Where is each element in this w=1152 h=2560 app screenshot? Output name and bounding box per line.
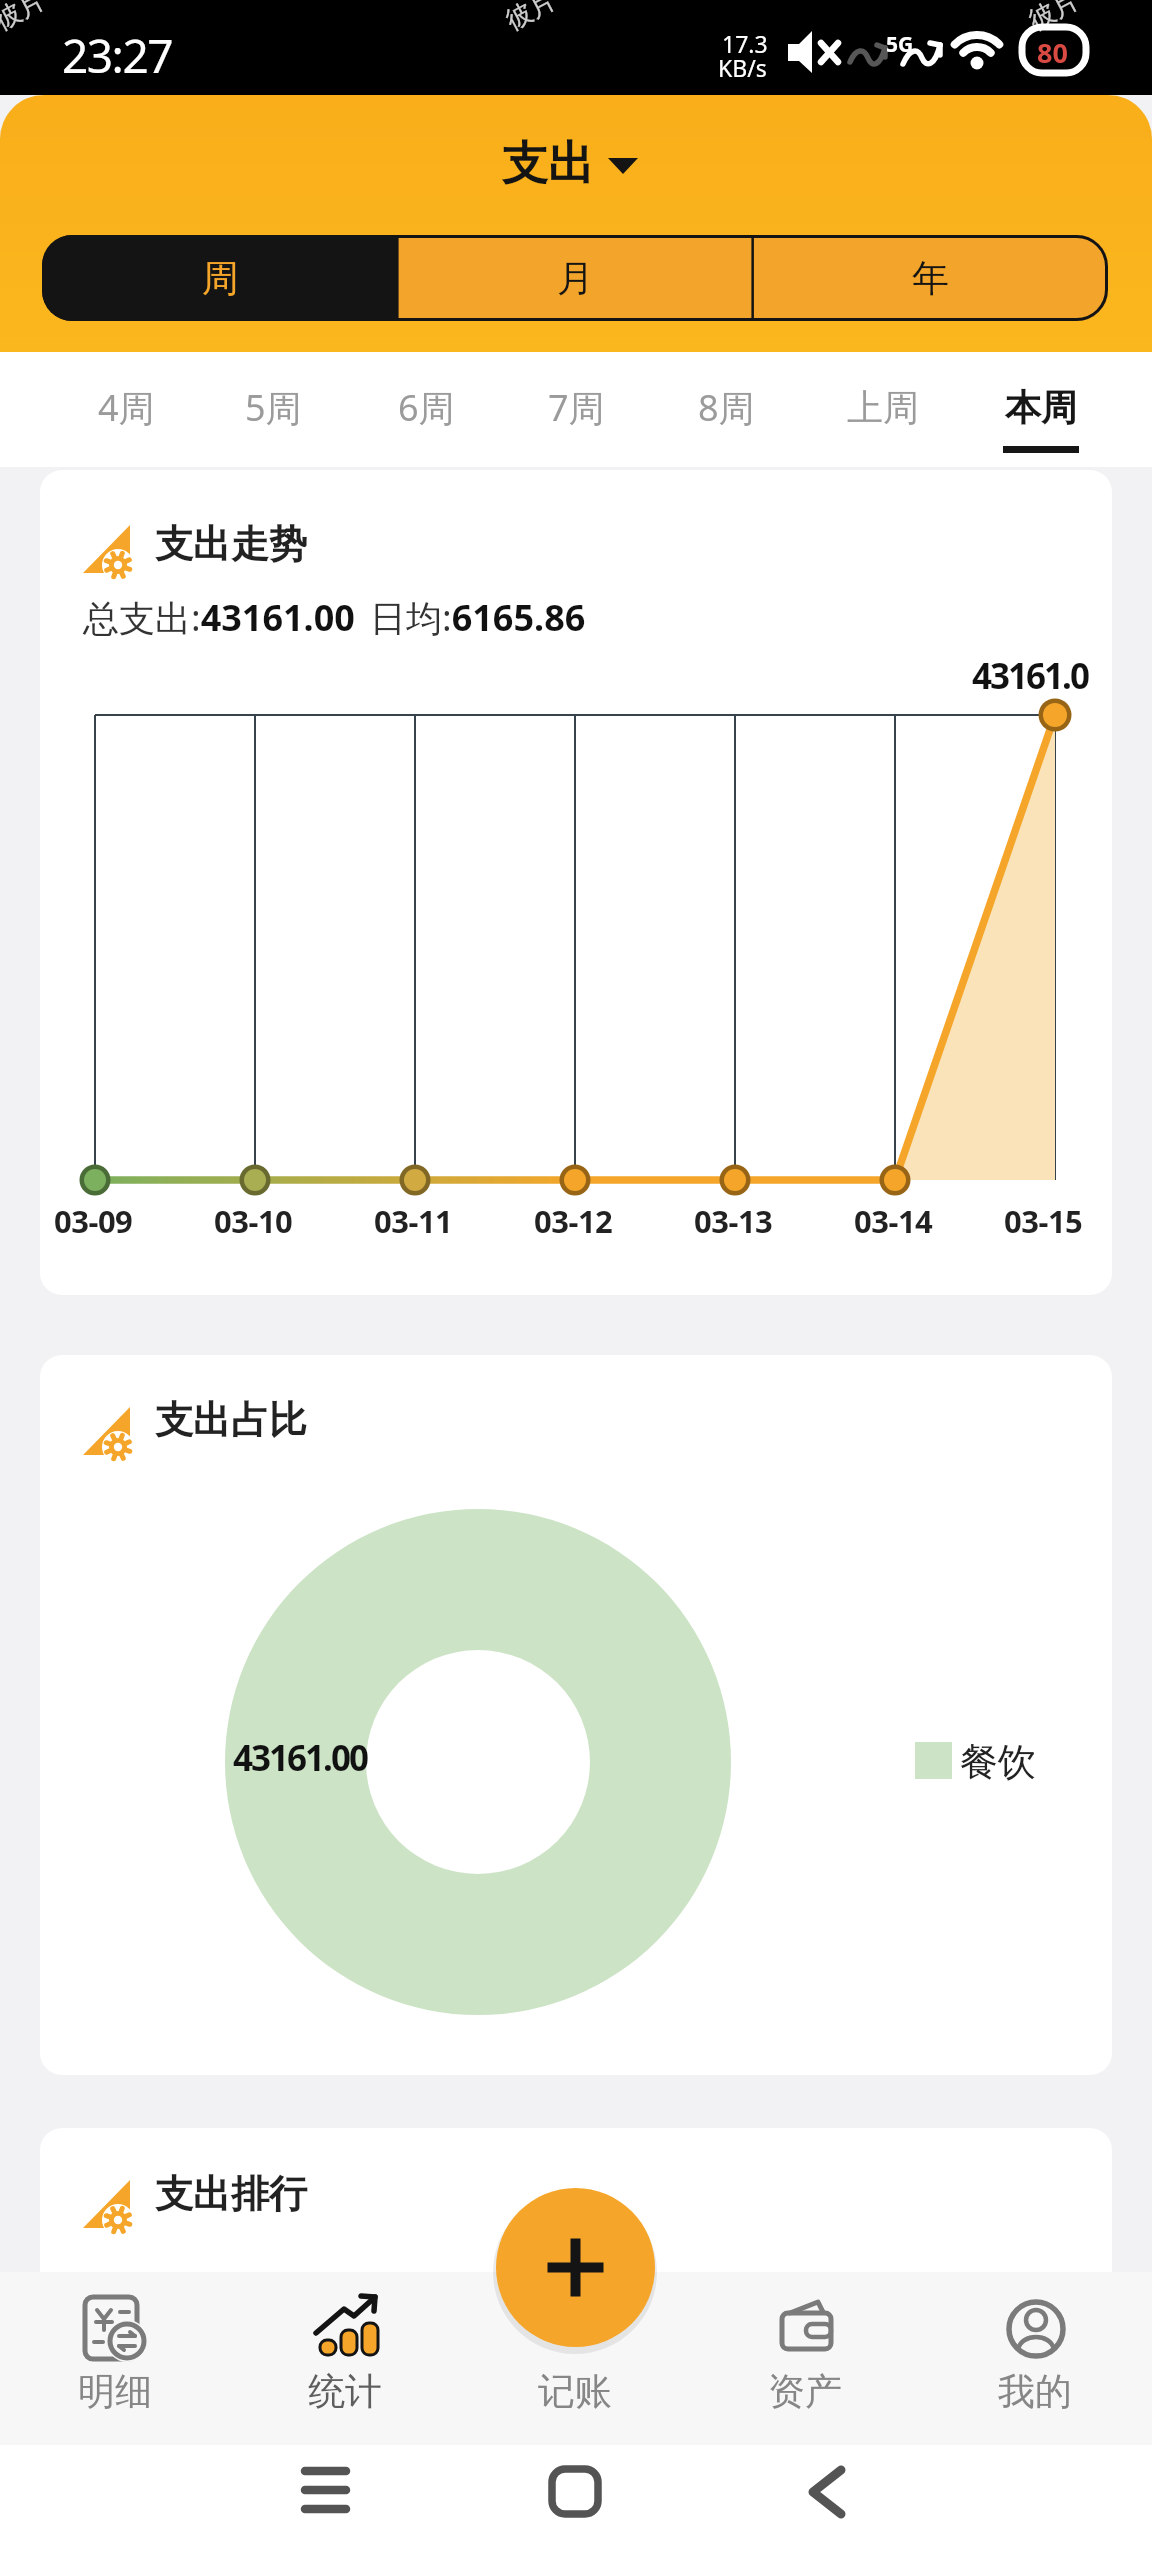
staticText: 43161.0 (972, 652, 1088, 700)
button[interactable]: 我的 (920, 2272, 1150, 2445)
staticText: 周 (202, 255, 239, 302)
staticText: 统计 (308, 2368, 382, 2415)
button[interactable] (496, 2188, 655, 2347)
button[interactable]: 本周 (1002, 374, 1080, 440)
staticText: 日均:6165.86 (370, 593, 586, 642)
button[interactable]: 月 (398, 235, 753, 321)
button[interactable]: 上周 (845, 374, 921, 440)
staticText: 03-12 (534, 1200, 613, 1242)
staticText: 资产 (768, 2368, 842, 2415)
staticText: 支出 (502, 135, 594, 193)
staticText: 彼片 (500, 0, 562, 37)
button[interactable]: 资产 (690, 2272, 920, 2445)
staticText: 8周 (698, 383, 755, 432)
staticText: 4周 (98, 383, 155, 432)
staticText: 支出占比 (155, 1396, 307, 1444)
button[interactable]: 5周 (235, 374, 311, 440)
staticText: 03-11 (374, 1200, 453, 1242)
staticText: 彼片 (1023, 0, 1085, 37)
staticText: 彼片 (0, 0, 51, 37)
staticText: 80 (1037, 34, 1068, 71)
button[interactable]: 年 (753, 235, 1108, 321)
staticText: 17.3 (722, 28, 768, 59)
staticText: 我的 (998, 2368, 1072, 2415)
button[interactable]: 4周 (88, 374, 164, 440)
staticText: 5G (886, 30, 914, 59)
staticText: 餐饮 (960, 1738, 1036, 1786)
staticText: 本周 (1005, 385, 1077, 430)
staticText: 43161.00 (233, 1734, 367, 1782)
button[interactable]: 8周 (688, 374, 764, 440)
button[interactable]: 周 (42, 235, 398, 321)
staticText: 03-13 (694, 1200, 773, 1242)
staticText: 记账 (538, 2368, 612, 2415)
button[interactable]: 统计 (230, 2272, 460, 2445)
staticText: 03-10 (214, 1200, 293, 1242)
staticText: 03-14 (854, 1200, 933, 1242)
button[interactable]: 7周 (538, 374, 614, 440)
staticText: 03-09 (54, 1200, 133, 1242)
staticText: 23:27 (62, 24, 173, 87)
button[interactable]: 支出 (502, 135, 638, 193)
staticText: 月 (557, 255, 594, 302)
staticText: 7周 (548, 383, 605, 432)
staticText: 03-15 (1004, 1200, 1083, 1242)
staticText: 明细 (78, 2368, 152, 2415)
staticText: 支出走势 (155, 520, 307, 568)
staticText: 上周 (847, 385, 919, 430)
staticText: 支出排行 (155, 2170, 307, 2218)
button[interactable]: 6周 (388, 374, 464, 440)
button[interactable]: 记账 (460, 2272, 690, 2445)
staticText: 年 (912, 255, 949, 302)
staticText: 总支出:43161.00 (83, 593, 355, 642)
staticText: 6周 (398, 383, 455, 432)
button[interactable]: 明细 (0, 2272, 230, 2445)
staticText: KB/s (718, 52, 767, 83)
staticText: 5周 (245, 383, 302, 432)
